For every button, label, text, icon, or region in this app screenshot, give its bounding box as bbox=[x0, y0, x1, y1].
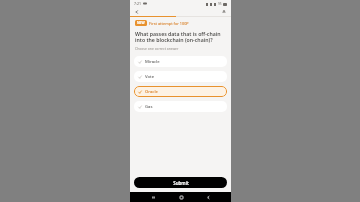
staticText: Miracle bbox=[145, 59, 160, 65]
button[interactable]: Recents bbox=[148, 192, 158, 202]
button[interactable]: Back bbox=[203, 192, 213, 202]
staticText: First attempt for 100P bbox=[149, 21, 189, 26]
staticText: Choose one correct answer bbox=[135, 46, 179, 51]
staticText: 7:21 bbox=[134, 1, 141, 6]
button[interactable]: Home bbox=[176, 192, 186, 202]
button[interactable]: Submit bbox=[134, 177, 227, 188]
staticText: Vote bbox=[145, 74, 155, 80]
staticText: Submit bbox=[173, 180, 189, 186]
button[interactable]: Vote bbox=[134, 71, 227, 82]
button[interactable]: Gas bbox=[134, 101, 227, 112]
staticText: Gas bbox=[145, 104, 153, 110]
button[interactable]: Miracle bbox=[134, 56, 227, 67]
staticText: 95 bbox=[218, 2, 222, 6]
staticText: NEW bbox=[137, 21, 145, 25]
staticText: Oracle bbox=[145, 89, 158, 95]
button[interactable]: Profile bbox=[220, 8, 228, 16]
staticText: What passes data that is off-chain into … bbox=[135, 30, 226, 44]
button[interactable]: Oracle bbox=[134, 86, 227, 97]
button[interactable]: Back bbox=[133, 8, 141, 16]
